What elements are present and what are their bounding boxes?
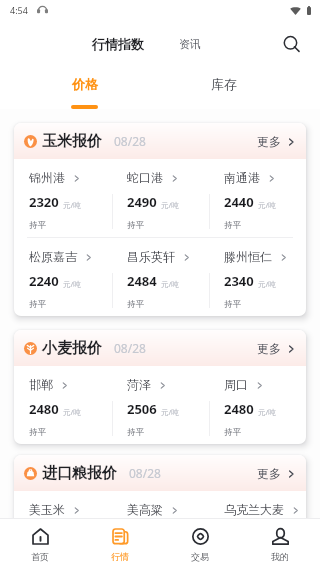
staticText: 更多 — [257, 341, 281, 356]
button[interactable]: 行情指数 — [85, 28, 151, 60]
staticText: 元/吨 — [258, 407, 276, 417]
button[interactable]: 蛇口港 — [112, 159, 209, 237]
button[interactable]: 库存 — [154, 68, 294, 109]
staticText: 资讯 — [179, 37, 201, 51]
staticText: 我的 — [271, 551, 289, 562]
staticText: 邯郸 — [29, 377, 53, 392]
staticText: 2340 — [224, 272, 254, 290]
staticText: 4:54 — [10, 4, 28, 16]
staticText: 美高粱 — [127, 502, 163, 517]
staticText: 持平 — [127, 427, 144, 438]
button[interactable]: 行情 — [80, 519, 160, 570]
button[interactable]: Search — [257, 25, 316, 68]
button[interactable]: 我的 — [240, 519, 320, 570]
staticText: 行情 — [111, 551, 129, 562]
staticText: 元/吨 — [161, 407, 179, 417]
staticText: 首页 — [31, 551, 49, 562]
staticText: 2440 — [224, 193, 254, 211]
staticText: 元/吨 — [63, 200, 81, 210]
button[interactable]: 更多 — [254, 461, 298, 486]
button[interactable]: 价格 — [14, 68, 154, 109]
staticText: 昌乐英轩 — [127, 249, 175, 264]
staticText: 2240 — [29, 272, 59, 290]
staticText: 周口 — [224, 377, 248, 392]
staticText: 更多 — [257, 466, 281, 481]
button[interactable]: 滕州恒仁 — [209, 238, 306, 316]
button[interactable]: 昌乐英轩 — [112, 238, 209, 316]
staticText: 元/吨 — [63, 407, 81, 417]
staticText: 价格 — [72, 76, 98, 92]
button[interactable]: 首页 — [0, 519, 80, 570]
button[interactable]: 更多 — [254, 129, 298, 154]
staticText: 乌克兰大麦 — [224, 502, 284, 517]
staticText: 交易 — [191, 551, 209, 562]
button[interactable]: 美玉米 — [14, 491, 112, 518]
staticText: 2506 — [127, 400, 157, 418]
staticText: 持平 — [224, 427, 241, 438]
staticText: 2480 — [29, 400, 59, 418]
staticText: 2480 — [224, 400, 254, 418]
staticText: 小麦报价 — [42, 339, 102, 358]
staticText: 2320 — [29, 193, 59, 211]
staticText: 持平 — [29, 427, 46, 438]
staticText: 元/吨 — [258, 200, 276, 210]
button[interactable]: 菏泽 — [112, 366, 209, 444]
staticText: 滕州恒仁 — [224, 249, 272, 264]
button[interactable]: 资讯 — [172, 29, 208, 59]
staticText: 持平 — [127, 220, 144, 231]
staticText: 08/28 — [129, 465, 161, 481]
staticText: 元/吨 — [258, 279, 276, 289]
staticText: 更多 — [257, 134, 281, 149]
staticText: 玉米报价 — [42, 132, 102, 151]
staticText: 持平 — [29, 299, 46, 310]
staticText: 库存 — [211, 76, 237, 92]
staticText: 2490 — [127, 193, 157, 211]
staticText: 行情指数 — [92, 36, 144, 52]
button[interactable]: 交易 — [160, 519, 240, 570]
button[interactable]: 周口 — [209, 366, 306, 444]
staticText: 持平 — [224, 220, 241, 231]
staticText: 持平 — [127, 299, 144, 310]
staticText: 蛇口港 — [127, 170, 163, 185]
staticText: 元/吨 — [161, 200, 179, 210]
button[interactable]: 乌克兰大麦 — [209, 491, 306, 518]
staticText: 08/28 — [114, 340, 146, 356]
staticText: 菏泽 — [127, 377, 151, 392]
staticText: 进口粮报价 — [42, 464, 117, 483]
button[interactable]: 美高粱 — [112, 491, 209, 518]
staticText: 松原嘉吉 — [29, 249, 77, 264]
staticText: 08/28 — [114, 133, 146, 149]
button[interactable]: 更多 — [254, 336, 298, 361]
staticText: 美玉米 — [29, 502, 65, 517]
staticText: 锦州港 — [29, 170, 65, 185]
staticText: 2484 — [127, 272, 157, 290]
staticText: 元/吨 — [63, 279, 81, 289]
staticText: 元/吨 — [161, 279, 179, 289]
staticText: 南通港 — [224, 170, 260, 185]
button[interactable]: 松原嘉吉 — [14, 238, 112, 316]
button[interactable]: 邯郸 — [14, 366, 112, 444]
button[interactable]: 锦州港 — [14, 159, 112, 237]
button[interactable]: 南通港 — [209, 159, 306, 237]
staticText: 持平 — [224, 299, 241, 310]
staticText: 持平 — [29, 220, 46, 231]
